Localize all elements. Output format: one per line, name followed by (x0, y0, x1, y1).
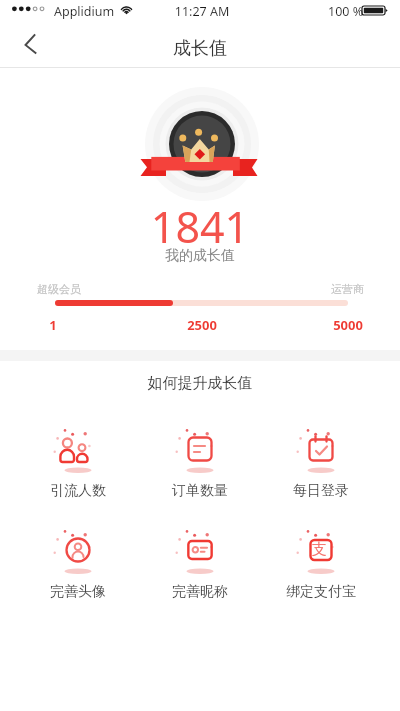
staticText: 订单数量 (152, 482, 248, 500)
button[interactable]: 引流人数 (30, 421, 126, 499)
button[interactable]: 订单数量 (152, 421, 248, 499)
staticText: 支 (311, 540, 327, 559)
staticText: 5000 (324, 316, 372, 334)
staticText: 完善昵称 (152, 583, 248, 601)
staticText: 引流人数 (30, 482, 126, 500)
button[interactable]: 完善头像 (30, 522, 126, 600)
staticText: Applidium (54, 3, 115, 20)
staticText: 1841 (0, 197, 400, 256)
button[interactable]: 完善昵称 (152, 522, 248, 600)
staticText: 每日登录 (273, 482, 369, 500)
staticText: 成长值 (0, 37, 400, 60)
staticText: 绑定支付宝 (273, 583, 369, 601)
staticText: 2500 (178, 316, 226, 334)
button[interactable]: 每日登录 (273, 421, 369, 499)
button[interactable]: Back (8, 22, 54, 68)
staticText: 100 % (328, 3, 364, 20)
staticText: 我的成长值 (0, 247, 400, 265)
staticText: 1 (41, 316, 65, 334)
button[interactable]: 绑定支付宝 (273, 522, 369, 600)
staticText: 11:27 AM (170, 3, 234, 20)
staticText: 超级会员 (37, 282, 81, 296)
staticText: 运营商 (331, 282, 364, 296)
staticText: 完善头像 (30, 583, 126, 601)
staticText: 如何提升成长值 (0, 374, 400, 393)
